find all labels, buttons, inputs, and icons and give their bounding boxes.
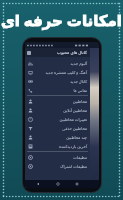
- button[interactable]: Home: [51, 180, 65, 188]
- button[interactable]: تنظیمات: [25, 153, 90, 162]
- staticText: آخرین بازدیدکننده: [59, 144, 87, 149]
- staticText: تغییرات مخاطبین: [59, 117, 87, 122]
- staticText: مخاطبین حذفی: [62, 126, 87, 131]
- button[interactable]: مخاطبین: [25, 97, 90, 106]
- button[interactable]: آهنگ و کلیپ منتشره جدید: [25, 68, 90, 77]
- staticText: چند مخاطبین: [66, 135, 87, 140]
- staticText: مخاطبین آنلاین: [63, 108, 87, 113]
- staticText: تنظیمات: [73, 155, 87, 160]
- button[interactable]: آلبوم جدید: [25, 59, 90, 68]
- staticText: تماس ها: [73, 88, 87, 93]
- staticText: کانال های محبوب: [57, 50, 88, 56]
- staticText: تنظیمات اشتراک: [60, 164, 87, 169]
- staticText: مخاطبین: [72, 99, 87, 104]
- button[interactable]: مخاطبین حذفی: [25, 124, 90, 133]
- button[interactable]: تغییرات مخاطبین: [25, 115, 90, 124]
- button[interactable]: Menu: [27, 51, 31, 55]
- staticText: امکانات حرفه ای: [1, 10, 122, 30]
- button[interactable]: تنظیمات اشتراک: [25, 162, 90, 171]
- staticText: کانال جدید: [70, 79, 87, 84]
- button[interactable]: تماس ها: [25, 86, 90, 95]
- button[interactable]: Recents: [70, 180, 84, 188]
- button[interactable]: چند مخاطبین: [25, 133, 90, 142]
- button[interactable]: آخرین بازدیدکننده: [25, 142, 90, 151]
- button[interactable]: Back: [31, 180, 45, 188]
- button[interactable]: کانال جدید: [25, 77, 90, 86]
- staticText: آلبوم جدید: [70, 61, 87, 66]
- staticText: آهنگ و کلیپ منتشره جدید: [45, 70, 87, 75]
- button[interactable]: مخاطبین آنلاین: [25, 106, 90, 115]
